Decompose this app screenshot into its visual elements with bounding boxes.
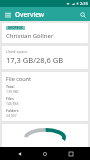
staticText: DROPBOX bbox=[8, 26, 23, 30]
staticText: 139,980 bbox=[6, 89, 19, 94]
button[interactable]: Used space bbox=[2, 46, 88, 69]
staticText: 2:35 bbox=[80, 1, 88, 6]
button[interactable]: Open navigation drawer bbox=[2, 9, 13, 20]
button[interactable]: Search bbox=[77, 9, 88, 20]
staticText: File count bbox=[6, 75, 31, 82]
button[interactable]: File count bbox=[2, 72, 88, 121]
staticText: Folders bbox=[6, 108, 19, 113]
button[interactable]: Home bbox=[39, 148, 51, 160]
staticText: Overview bbox=[15, 10, 45, 19]
staticText: Used space bbox=[6, 49, 28, 54]
button[interactable] bbox=[2, 124, 88, 147]
button[interactable]: Back bbox=[14, 148, 26, 160]
staticText: Files bbox=[6, 96, 14, 101]
staticText: 146,863 bbox=[6, 101, 19, 106]
button[interactable]: DROPBOX bbox=[2, 23, 88, 43]
staticText: Total bbox=[6, 84, 15, 89]
staticText: Christian Göllner bbox=[6, 32, 54, 40]
staticText: 17,3 GB/28,6 GB bbox=[6, 55, 64, 65]
staticText: 24,907 bbox=[6, 113, 17, 118]
button[interactable]: Recent apps bbox=[65, 148, 77, 160]
